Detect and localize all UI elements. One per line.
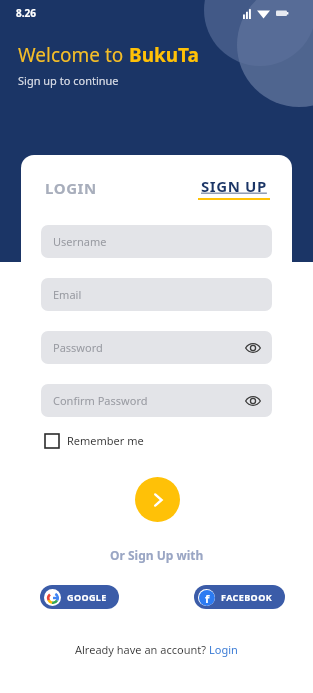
button[interactable]: LOGIN (45, 178, 97, 198)
staticText: Already have an account? (75, 642, 209, 657)
staticText: Password (53, 340, 103, 355)
button[interactable]: Login (209, 642, 238, 657)
staticText: Username (53, 234, 107, 249)
button[interactable]: Password (41, 331, 272, 364)
staticText: Confirm Password (53, 393, 148, 408)
staticText: Remember me (67, 433, 144, 448)
staticText: 8.26 (16, 6, 36, 20)
staticText: f (205, 591, 210, 606)
staticText: Or Sign Up with (110, 547, 204, 563)
button[interactable]: Continue (129, 471, 186, 528)
staticText: Sign up to continue (18, 73, 119, 88)
staticText: Email (53, 287, 82, 302)
staticText: SIGN UP (201, 176, 267, 196)
button[interactable]: Show password (244, 392, 262, 410)
staticText: Login (209, 642, 238, 657)
staticText: GOOGLE (67, 591, 107, 603)
button[interactable]: Username (41, 225, 272, 258)
button[interactable]: GOOGLE (40, 585, 119, 609)
button[interactable]: Email (41, 278, 272, 311)
staticText: Welcome to (18, 42, 129, 68)
button[interactable]: f (194, 585, 285, 609)
staticText: LOGIN (45, 178, 97, 198)
button[interactable]: Confirm Password (41, 384, 272, 417)
button[interactable]: Remember me (45, 433, 144, 448)
staticText: FACEBOOK (221, 591, 273, 603)
button[interactable]: SIGN UP (198, 176, 270, 200)
button[interactable]: Show password (244, 339, 262, 357)
staticText: BukuTa (129, 42, 199, 68)
